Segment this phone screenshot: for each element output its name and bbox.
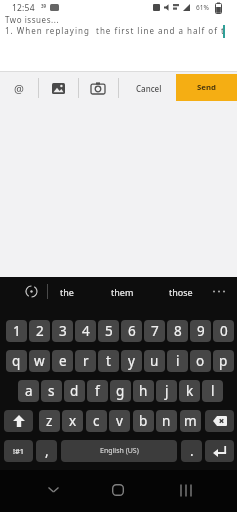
button[interactable]: q — [6, 350, 27, 372]
button[interactable] — [205, 410, 234, 432]
staticText: q — [12, 352, 21, 370]
button[interactable]: d — [64, 380, 85, 402]
button[interactable]: c — [86, 410, 107, 432]
button[interactable]: @ — [6, 76, 32, 100]
staticText: f — [95, 382, 100, 400]
staticText: c — [93, 412, 100, 430]
button[interactable]: 8 — [167, 320, 188, 342]
staticText: e — [59, 352, 67, 370]
button[interactable]: t — [98, 350, 119, 372]
staticText: s — [48, 382, 55, 400]
button[interactable]: them — [105, 281, 139, 303]
button[interactable]: 0 — [213, 320, 234, 342]
button[interactable]: a — [18, 380, 39, 402]
staticText: 5 — [105, 322, 113, 340]
button[interactable]: 7 — [144, 320, 165, 342]
button[interactable]: 9 — [190, 320, 211, 342]
button[interactable] — [101, 475, 135, 505]
button[interactable] — [12, 281, 50, 303]
staticText: Send — [197, 82, 216, 93]
button[interactable]: . — [181, 440, 202, 462]
button[interactable] — [205, 440, 234, 462]
button[interactable]: the — [52, 281, 82, 303]
button[interactable]: s — [41, 380, 62, 402]
button[interactable]: y — [121, 350, 142, 372]
staticText: j — [165, 382, 169, 400]
button[interactable] — [169, 475, 203, 505]
staticText: 61% — [196, 3, 209, 12]
staticText: 39 — [41, 3, 47, 9]
staticText: w — [34, 352, 45, 370]
staticText: 7 — [151, 322, 159, 340]
staticText: g — [116, 382, 125, 400]
staticText: z — [46, 412, 53, 430]
staticText: 6 — [128, 322, 136, 340]
staticText: 12:54 — [12, 2, 35, 14]
button[interactable] — [86, 76, 110, 100]
staticText: Two issues... — [5, 14, 60, 25]
button[interactable]: f — [87, 380, 108, 402]
staticText: r — [83, 352, 89, 370]
staticText: h — [139, 382, 148, 400]
button[interactable]: e — [52, 350, 73, 372]
button[interactable]: i — [167, 350, 188, 372]
staticText: 8 — [174, 322, 182, 340]
button[interactable]: 2 — [29, 320, 50, 342]
staticText: @ — [14, 81, 24, 96]
staticText: 1. When replaying the first line and a h… — [5, 25, 225, 36]
button[interactable]: Cancel — [128, 76, 170, 100]
staticText: i — [176, 352, 180, 370]
button[interactable]: 4 — [75, 320, 96, 342]
button[interactable]: x — [62, 410, 83, 432]
staticText: 3 — [59, 322, 67, 340]
button[interactable]: v — [109, 410, 130, 432]
staticText: t — [106, 352, 111, 370]
button[interactable] — [46, 76, 70, 100]
staticText: l — [211, 382, 215, 400]
staticText: u — [150, 352, 159, 370]
staticText: 1 — [13, 322, 21, 340]
button[interactable] — [4, 410, 33, 432]
staticText: them — [111, 286, 134, 298]
button[interactable]: 1 — [6, 320, 27, 342]
staticText: n — [162, 412, 171, 430]
button[interactable]: m — [180, 410, 201, 432]
button[interactable]: those — [163, 281, 199, 303]
button[interactable]: l — [202, 380, 223, 402]
button[interactable]: u — [144, 350, 165, 372]
button[interactable]: h — [133, 380, 154, 402]
staticText: x — [69, 412, 77, 430]
button[interactable]: z — [39, 410, 60, 432]
button[interactable]: w — [29, 350, 50, 372]
staticText: y — [128, 352, 135, 370]
button[interactable]: g — [110, 380, 131, 402]
button[interactable]: p — [213, 350, 234, 372]
button[interactable]: Send — [176, 74, 237, 101]
staticText: m — [184, 412, 197, 430]
button[interactable]: k — [179, 380, 200, 402]
button[interactable]: r — [75, 350, 96, 372]
staticText: 9 — [197, 322, 205, 340]
staticText: . — [190, 442, 194, 460]
staticText: 2 — [36, 322, 44, 340]
button[interactable]: n — [156, 410, 177, 432]
staticText: 0 — [220, 322, 228, 340]
staticText: the — [60, 286, 74, 298]
staticText: k — [186, 382, 194, 400]
staticText: Cancel — [136, 83, 162, 94]
staticText: v — [116, 412, 123, 430]
staticText: , — [45, 442, 49, 460]
button[interactable]: 3 — [52, 320, 73, 342]
button[interactable] — [36, 475, 70, 505]
button[interactable]: , — [36, 440, 57, 462]
button[interactable]: !#1 — [4, 440, 33, 462]
staticText: those — [169, 286, 193, 298]
button[interactable]: English (US) — [61, 440, 177, 462]
button[interactable]: 5 — [98, 320, 119, 342]
button[interactable]: j — [156, 380, 177, 402]
staticText: b — [139, 412, 148, 430]
staticText: o — [196, 352, 205, 370]
button[interactable]: o — [190, 350, 211, 372]
button[interactable]: 6 — [121, 320, 142, 342]
button[interactable]: b — [133, 410, 154, 432]
